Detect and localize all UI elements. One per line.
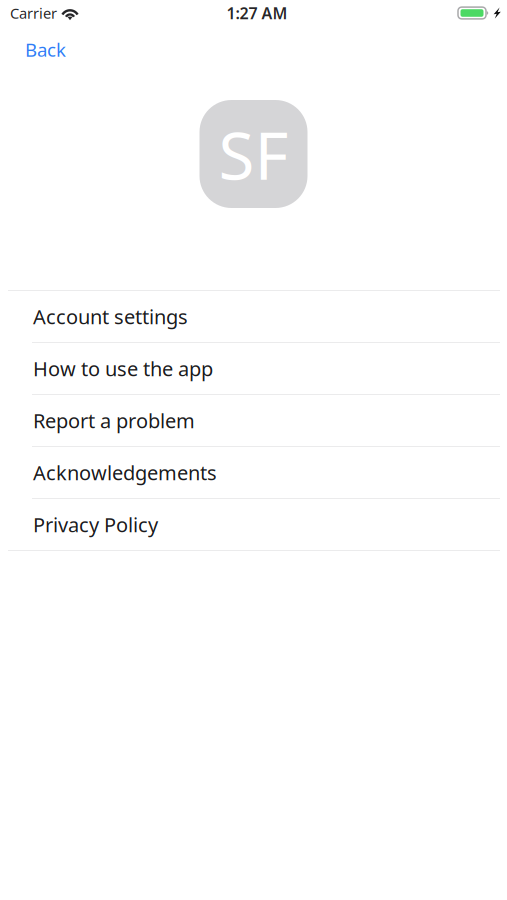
staticText: How to use the app: [33, 355, 213, 382]
staticText: Acknowledgements: [33, 459, 217, 486]
button[interactable]: Back: [0, 23, 86, 73]
staticText: Report a problem: [33, 407, 195, 434]
button[interactable]: Privacy Policy: [0, 499, 507, 551]
staticText: SF: [218, 111, 288, 198]
staticText: Account settings: [33, 303, 188, 330]
staticText: Privacy Policy: [33, 511, 158, 538]
staticText: Back: [25, 37, 66, 62]
staticText: Carrier: [10, 3, 57, 23]
button[interactable]: Acknowledgements: [0, 447, 507, 499]
button[interactable]: Account settings: [0, 291, 507, 343]
button[interactable]: How to use the app: [0, 343, 507, 395]
staticText: 1:27 AM: [226, 2, 287, 24]
button[interactable]: Report a problem: [0, 395, 507, 447]
